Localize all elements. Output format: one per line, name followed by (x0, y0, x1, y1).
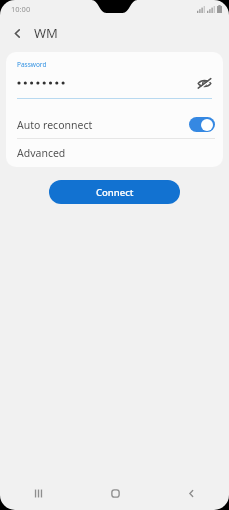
button[interactable]: Connect (49, 180, 180, 204)
button[interactable]: Show password (193, 72, 215, 94)
button[interactable]: Auto reconnect (189, 117, 215, 132)
staticText: Advanced (17, 146, 66, 160)
staticText: WM (34, 24, 58, 42)
button[interactable]: Home (77, 476, 153, 510)
button[interactable]: Recent apps (0, 476, 77, 510)
staticText: 10:00 (11, 4, 31, 14)
staticText: Connect (96, 186, 134, 199)
button[interactable]: Advanced (6, 139, 223, 166)
button[interactable]: Auto reconnect (6, 111, 223, 138)
button[interactable]: Back (153, 476, 229, 510)
staticText: Auto reconnect (17, 118, 189, 132)
button[interactable]: Navigate up (5, 21, 29, 45)
staticText: Password (17, 60, 47, 69)
button[interactable]: Password (6, 52, 223, 98)
